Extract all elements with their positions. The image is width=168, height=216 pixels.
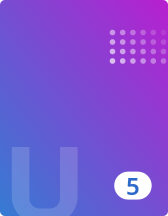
staticText: 5 (126, 170, 140, 202)
button[interactable]: 5 (114, 172, 152, 200)
